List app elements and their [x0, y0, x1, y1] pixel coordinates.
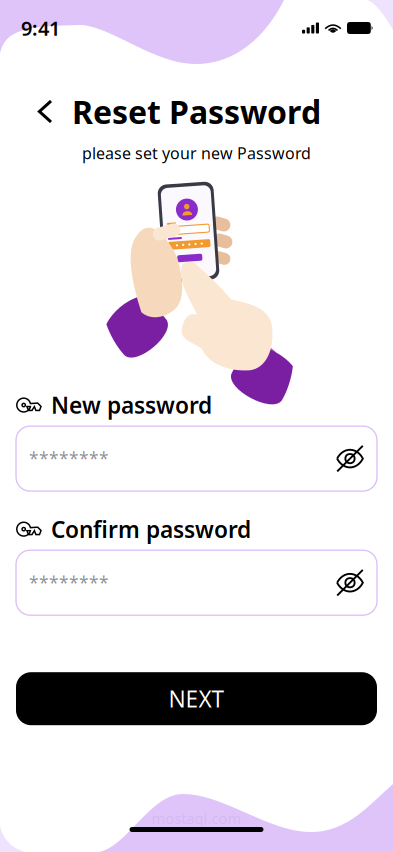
staticText: Confirm password: [51, 514, 251, 544]
staticText: ********: [29, 571, 109, 594]
button[interactable]: NEXT: [16, 672, 377, 725]
staticText: New password: [51, 390, 212, 420]
staticText: Reset Password: [72, 90, 321, 133]
button[interactable]: ********: [16, 550, 377, 615]
staticText: please set your new Password: [82, 142, 311, 164]
staticText: 9:41: [21, 15, 60, 41]
button[interactable]: ********: [16, 426, 377, 491]
staticText: mostaql.com: [151, 808, 241, 828]
staticText: ********: [29, 447, 109, 470]
staticText: NEXT: [168, 684, 224, 714]
button[interactable]: Back: [29, 89, 61, 134]
